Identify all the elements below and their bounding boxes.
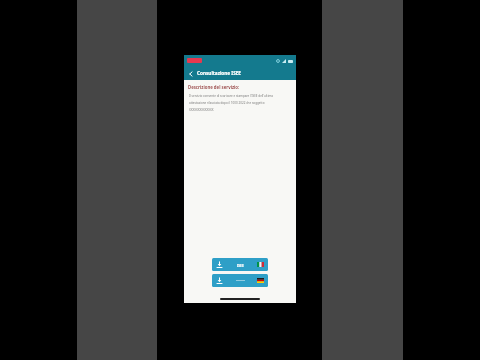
button[interactable]: Scarica ISEE estero [212, 274, 268, 287]
staticText: Il servizio consente di scaricare e stam… [189, 94, 273, 98]
staticText: XXXXXXXXXXXXXX [189, 108, 214, 112]
button[interactable]: Scarica ISEE italiano [212, 258, 268, 271]
staticText: attestazione rilasciata dopo il 1000 202… [189, 101, 265, 105]
staticText: Consultazione ISEE [197, 70, 241, 76]
staticText: Descrizione del servizio: [188, 84, 240, 90]
button[interactable]: Back [184, 67, 197, 80]
staticText: ISEE [237, 263, 244, 267]
